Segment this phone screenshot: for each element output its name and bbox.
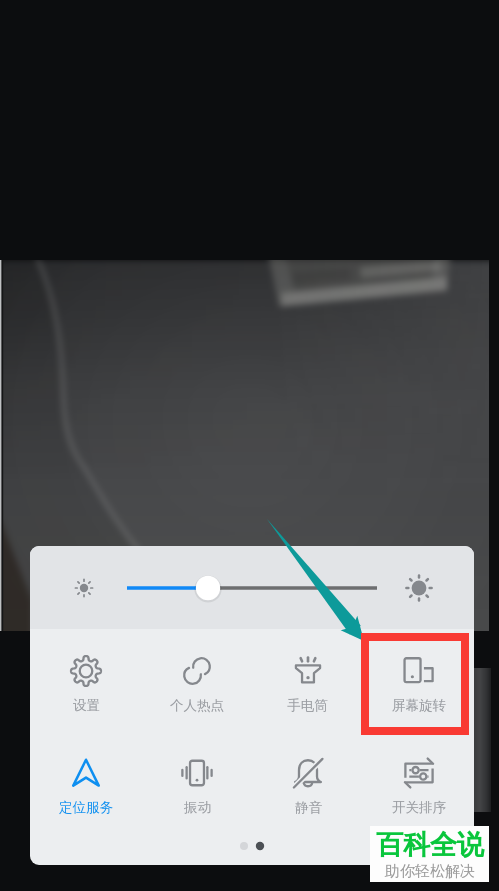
staticText: 助你轻松解决	[385, 862, 475, 881]
button[interactable]: 屏幕旋转	[363, 654, 474, 725]
button[interactable]: 静音	[252, 756, 363, 827]
staticText: 百科全说	[376, 828, 484, 862]
staticText: 设置	[73, 697, 100, 714]
button[interactable]: 设置	[30, 654, 141, 725]
staticText: 屏幕旋转	[392, 697, 446, 714]
button[interactable]: 定位服务	[30, 756, 141, 827]
staticText: 定位服务	[59, 799, 113, 816]
staticText: 个人热点	[170, 697, 224, 714]
staticText: 手电筒	[287, 697, 328, 714]
staticText: 振动	[184, 799, 211, 816]
button[interactable]: 开关排序	[363, 756, 474, 827]
button[interactable]: 个人热点	[141, 654, 252, 725]
button[interactable]: 手电筒	[252, 654, 363, 725]
button[interactable]: Brightness	[30, 546, 474, 629]
staticText: 静音	[295, 799, 322, 816]
button[interactable]: 振动	[141, 756, 252, 827]
staticText: 开关排序	[392, 799, 446, 816]
